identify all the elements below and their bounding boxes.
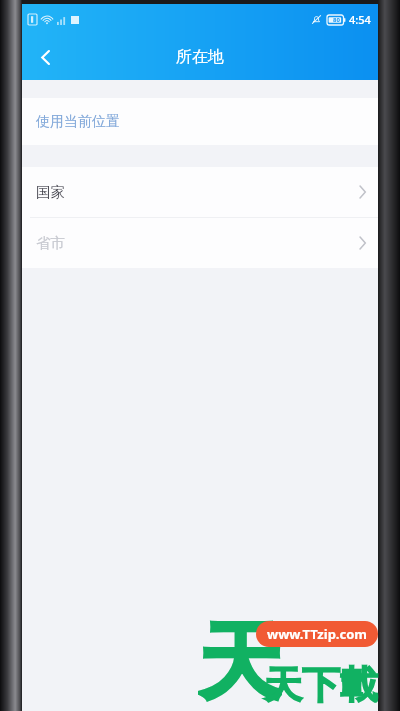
- button[interactable]: Back: [22, 34, 68, 80]
- button[interactable]: 使用当前位置: [22, 98, 378, 145]
- button: 省市: [22, 218, 378, 268]
- staticText: 天下載: [264, 661, 378, 709]
- button[interactable]: 国家: [22, 167, 378, 217]
- staticText: 天: [198, 610, 282, 711]
- staticText: 所在地: [176, 47, 224, 67]
- staticText: 国家: [36, 183, 65, 201]
- staticText: 4:54: [349, 12, 371, 27]
- staticText: 省市: [36, 234, 65, 252]
- staticText: 80: [333, 16, 340, 24]
- staticText: www.TTzip.com: [267, 625, 368, 643]
- staticText: 使用当前位置: [36, 113, 120, 131]
